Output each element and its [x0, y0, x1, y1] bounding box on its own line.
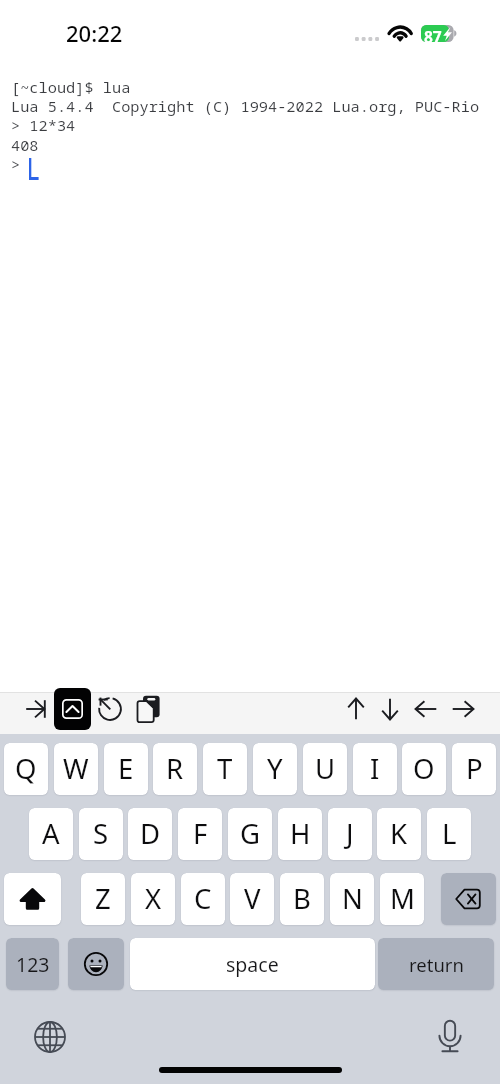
- button[interactable]: B: [280, 873, 324, 925]
- staticText: T: [217, 750, 233, 787]
- staticText: K: [390, 815, 408, 852]
- staticText: P: [466, 750, 483, 787]
- staticText: F: [193, 815, 208, 852]
- staticText: R: [166, 750, 184, 787]
- button[interactable]: A: [29, 808, 73, 860]
- button[interactable]: Arrow down: [375, 692, 405, 726]
- staticText: D: [140, 815, 161, 852]
- button[interactable]: W: [54, 743, 98, 795]
- staticText: W: [63, 750, 89, 787]
- staticText: > 12*34: [11, 115, 76, 136]
- staticText: M: [390, 880, 415, 917]
- button[interactable]: R: [153, 743, 197, 795]
- button[interactable]: I: [353, 743, 397, 795]
- button[interactable]: P: [452, 743, 496, 795]
- staticText: [~cloud]$ lua: [11, 77, 131, 98]
- button[interactable]: X: [131, 873, 175, 925]
- staticText: B: [293, 880, 311, 917]
- staticText: C: [194, 880, 212, 917]
- button[interactable]: J: [328, 808, 372, 860]
- staticText: 20:22: [66, 18, 123, 48]
- staticText: H: [290, 815, 311, 852]
- button[interactable]: H: [278, 808, 322, 860]
- button[interactable]: O: [402, 743, 446, 795]
- staticText: space: [226, 951, 279, 978]
- button[interactable]: Paste: [133, 692, 164, 726]
- staticText: Q: [15, 750, 37, 787]
- button[interactable]: Arrow left: [411, 692, 441, 726]
- staticText: return: [409, 952, 464, 977]
- staticText: G: [240, 815, 261, 852]
- staticText: >: [11, 154, 30, 175]
- button[interactable]: space: [130, 938, 375, 990]
- staticText: U: [315, 750, 336, 787]
- staticText: 123: [16, 951, 50, 978]
- button[interactable]: F: [178, 808, 222, 860]
- button[interactable]: return: [378, 938, 494, 990]
- staticText: L: [442, 815, 457, 852]
- button[interactable]: E: [104, 743, 148, 795]
- staticText: N: [342, 880, 363, 917]
- button[interactable]: Z: [81, 873, 125, 925]
- button[interactable]: U: [303, 743, 347, 795]
- button[interactable]: C: [181, 873, 225, 925]
- staticText: S: [93, 815, 109, 852]
- button[interactable]: Emoji: [68, 938, 124, 990]
- button[interactable]: N: [330, 873, 374, 925]
- staticText: J: [346, 815, 354, 852]
- button[interactable]: Dictation: [433, 1019, 467, 1053]
- staticText: O: [413, 750, 435, 787]
- staticText: E: [118, 750, 134, 787]
- button[interactable]: S: [79, 808, 123, 860]
- button[interactable]: T: [203, 743, 247, 795]
- staticText: 87: [424, 26, 442, 47]
- button[interactable]: History: [95, 692, 125, 726]
- staticText: A: [42, 815, 60, 852]
- button[interactable]: Backspace: [441, 873, 496, 925]
- button[interactable]: Tab: [20, 692, 51, 726]
- button[interactable]: G: [228, 808, 272, 860]
- button[interactable]: M: [380, 873, 424, 925]
- staticText: 408: [11, 135, 39, 156]
- staticText: I: [370, 750, 380, 787]
- staticText: Z: [95, 880, 111, 917]
- staticText: Y: [267, 750, 283, 787]
- button[interactable]: Arrow right: [448, 692, 478, 726]
- button[interactable]: K: [377, 808, 421, 860]
- button[interactable]: Change keyboard: [33, 1020, 66, 1053]
- button[interactable]: V: [230, 873, 274, 925]
- button[interactable]: Arrow up: [341, 692, 371, 726]
- button[interactable]: Y: [253, 743, 297, 795]
- staticText: X: [145, 880, 162, 917]
- button[interactable]: 123: [6, 938, 59, 990]
- button[interactable]: Q: [4, 743, 48, 795]
- button[interactable]: Shift: [4, 873, 61, 925]
- staticText: Lua 5.4.4 Copyright (C) 1994-2022 Lua.or…: [11, 96, 480, 117]
- button[interactable]: L: [427, 808, 471, 860]
- button[interactable]: D: [128, 808, 172, 860]
- button[interactable]: Control key: [54, 688, 91, 730]
- staticText: V: [244, 880, 261, 917]
